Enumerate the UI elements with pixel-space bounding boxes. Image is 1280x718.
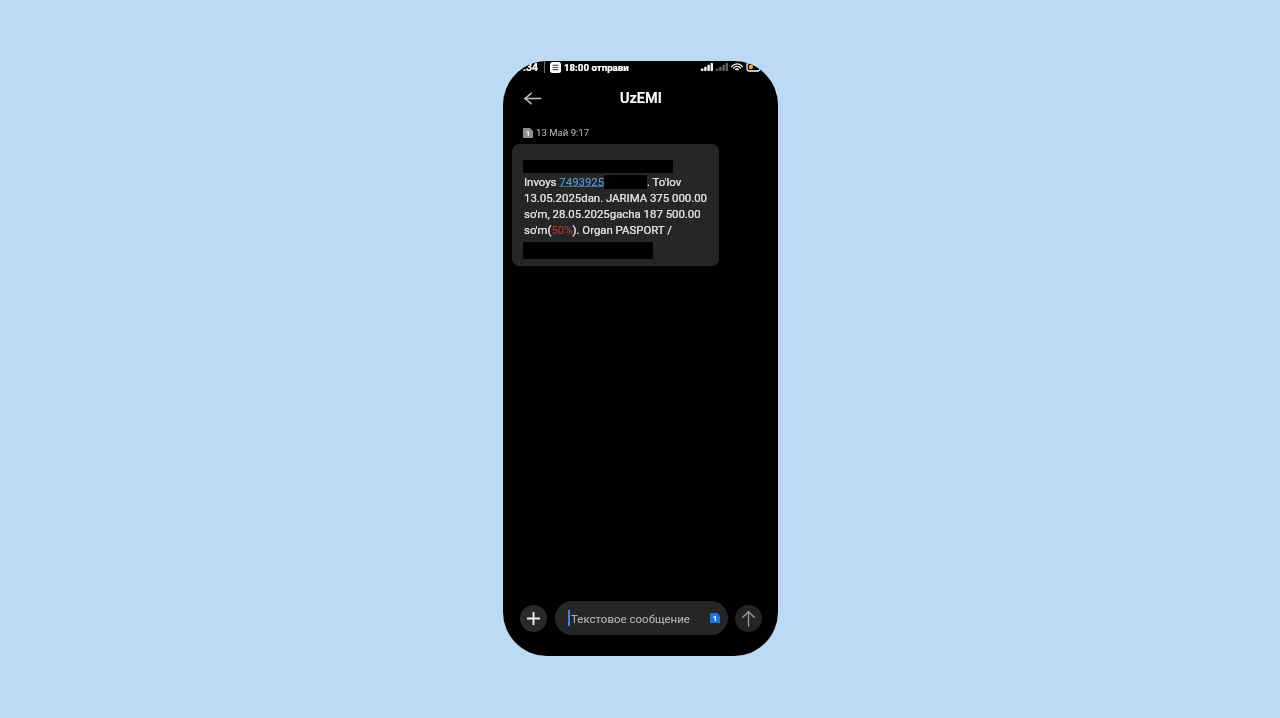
staticText: 1 <box>713 614 718 623</box>
staticText: Invoys 7493925XXXXXX. To'lov 13.05.2025d… <box>524 175 719 236</box>
button[interactable]: Invoys 7493925XXXXXX. To'lov 13.05.2025d… <box>512 144 719 266</box>
button[interactable]: Текстовое сообщение <box>555 601 728 635</box>
staticText: 13 Май 9:17 <box>536 127 590 138</box>
staticText: Текстовое сообщение <box>571 612 690 625</box>
button[interactable]: Back <box>517 83 547 113</box>
staticText: UzEMI <box>620 90 662 107</box>
staticText: 1 <box>526 129 531 138</box>
staticText: 7:34 <box>517 61 539 73</box>
button[interactable]: Add attachment <box>520 605 547 632</box>
button[interactable]: Send <box>735 605 762 632</box>
staticText: 18:00 отправи <box>564 62 629 73</box>
